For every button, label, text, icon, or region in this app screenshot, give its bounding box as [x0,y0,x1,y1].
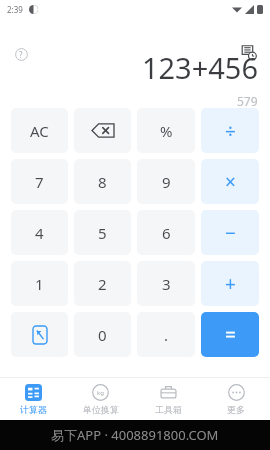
staticText: 7 [35,172,44,192]
button[interactable]: 4 [11,210,68,255]
staticText: 2:39 [7,4,23,15]
button[interactable]: 9 [137,159,195,204]
button[interactable]: ÷ [201,108,259,153]
staticText: 更多 [227,404,245,415]
button[interactable]: Expand [11,312,68,357]
button[interactable]: − [201,210,259,255]
staticText: 123+456 [141,48,258,87]
staticText: − [225,220,236,246]
button[interactable]: 7 [11,159,68,204]
button[interactable]: . [137,312,195,357]
staticText: 计算器 [20,404,47,415]
staticText: 0 [98,325,107,345]
button[interactable]: 更多 [202,378,270,420]
button[interactable]: 计算器 [0,378,67,420]
staticText: 9 [162,172,171,192]
staticText: kg [97,389,104,397]
staticText: 579 [237,93,258,108]
staticText: ÷ [225,118,236,144]
staticText: 6 [162,223,171,243]
button[interactable]: AC [11,108,68,153]
button[interactable]: 0 [74,312,131,357]
staticText: = [225,322,236,348]
button[interactable]: 8 [74,159,131,204]
button[interactable]: 工具箱 [134,378,202,420]
button[interactable]: × [201,159,259,204]
button[interactable]: Backspace [74,108,131,153]
button[interactable]: 5 [74,210,131,255]
staticText: ? [19,49,23,60]
button[interactable]: 1 [11,261,68,306]
staticText: 5 [98,223,107,243]
staticText: 1 [35,274,44,294]
staticText: % [160,121,173,141]
staticText: 工具箱 [155,404,182,415]
staticText: . [164,325,169,345]
button[interactable]: 3 [137,261,195,306]
button[interactable]: Help [10,43,32,65]
button[interactable]: % [137,108,195,153]
button[interactable]: 2 [74,261,131,306]
button[interactable]: = [201,312,259,357]
staticText: AC [30,121,49,141]
staticText: × [225,169,236,195]
staticText: 3 [162,274,171,294]
staticText: 2 [98,274,107,294]
staticText: 4 [35,223,44,243]
staticText: 8 [98,172,107,192]
button[interactable]: + [201,261,259,306]
button[interactable]: 6 [137,210,195,255]
button[interactable]: kg [67,378,134,420]
staticText: 易下APP · 4008891800.COM [51,426,219,444]
button[interactable]: History [236,40,260,64]
staticText: 单位换算 [83,404,119,415]
staticText: + [225,271,236,297]
